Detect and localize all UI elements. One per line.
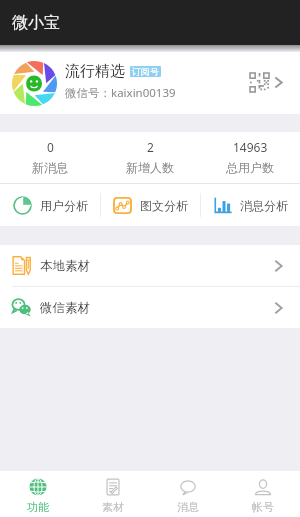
button[interactable]: 消息分析 (200, 184, 300, 226)
button[interactable]: 用户分析 (0, 184, 100, 226)
button[interactable]: 2 (100, 132, 200, 183)
staticText: 订阅号 (132, 66, 159, 77)
staticText: 微信号：kaixin00139 (65, 85, 176, 101)
button[interactable]: 消息 (150, 471, 225, 517)
staticText: 0 (47, 139, 54, 155)
button[interactable]: 本地素材 (0, 245, 300, 286)
staticText: 微小宝 (12, 13, 60, 33)
button[interactable]: 功能 (0, 471, 75, 517)
button[interactable]: 帐号 (225, 471, 300, 517)
staticText: 用户分析 (40, 198, 88, 213)
staticText: 流行精选 (65, 62, 125, 81)
staticText: 微信素材 (40, 300, 90, 316)
button[interactable]: 14963 (200, 132, 300, 183)
staticText: 新增人数 (126, 160, 174, 175)
button[interactable]: 微信素材 (0, 287, 300, 328)
staticText: 消息分析 (240, 198, 288, 213)
staticText: 功能 (27, 500, 49, 514)
staticText: 本地素材 (40, 258, 90, 274)
staticText: 14963 (233, 139, 268, 155)
button[interactable]: 扫描二维码 (244, 68, 275, 99)
button[interactable]: 素材 (75, 471, 150, 517)
staticText: 帐号 (252, 500, 274, 514)
staticText: 图文分析 (140, 198, 188, 213)
staticText: 素材 (102, 500, 124, 514)
staticText: 消息 (177, 500, 199, 514)
staticText: 总用户数 (226, 160, 274, 175)
button[interactable]: 0 (0, 132, 100, 183)
staticText: 新消息 (32, 160, 68, 175)
button[interactable]: 图文分析 (100, 184, 200, 226)
staticText: 2 (147, 139, 154, 155)
button[interactable]: 流行精选 (0, 52, 300, 114)
